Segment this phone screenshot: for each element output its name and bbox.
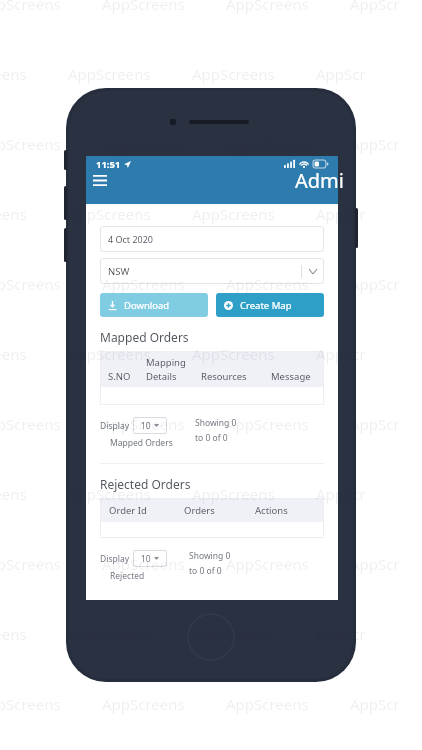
button[interactable]: 10 xyxy=(133,417,167,434)
staticText: AppScreens xyxy=(316,64,366,84)
button[interactable]: Download xyxy=(100,293,208,317)
staticText: Resources xyxy=(201,370,247,383)
staticText: Details xyxy=(146,370,177,383)
staticText: AppScreens xyxy=(68,64,192,84)
button[interactable]: 10 xyxy=(133,550,167,567)
staticText: Download xyxy=(124,299,170,312)
staticText: Create Map xyxy=(240,299,292,312)
staticText: AppScreens xyxy=(350,554,400,574)
staticText: AppScreens xyxy=(226,414,350,434)
staticText: AppScreens xyxy=(0,274,102,294)
staticText: AppScreens xyxy=(102,274,226,294)
staticText: AppScreens xyxy=(316,204,366,224)
staticText: Rejected xyxy=(110,570,145,582)
staticText: AppScreens xyxy=(192,64,316,84)
staticText: to 0 of 0 xyxy=(195,432,228,444)
staticText: AppScreens xyxy=(350,134,400,154)
staticText: AppScreens xyxy=(350,694,400,714)
staticText: NSW xyxy=(108,265,130,278)
staticText: AppScreens xyxy=(350,414,400,434)
staticText: Rejected Orders xyxy=(100,476,191,492)
staticText: AppScreens xyxy=(226,274,350,294)
staticText: 10 xyxy=(141,553,151,565)
staticText: Mapped Orders xyxy=(100,329,189,345)
staticText: AppScreens xyxy=(0,414,102,434)
staticText: AppScreens xyxy=(68,344,192,364)
staticText: Showing 0 xyxy=(189,550,231,562)
staticText: AppScreens xyxy=(192,344,316,364)
staticText: Showing 0 xyxy=(195,417,237,429)
staticText: AppScreens xyxy=(68,484,192,504)
staticText: AppScreens xyxy=(226,0,350,14)
staticText: AppScreens xyxy=(0,204,68,224)
staticText: 4 Oct 2020 xyxy=(108,233,154,245)
staticText: AppScreens xyxy=(0,344,68,364)
staticText: Admi xyxy=(295,167,344,194)
staticText: AppScreens xyxy=(102,694,226,714)
staticText: AppScreens xyxy=(102,554,226,574)
staticText: AppScreens xyxy=(350,274,400,294)
staticText: AppScreens xyxy=(102,414,226,434)
staticText: Order Id xyxy=(109,504,147,517)
staticText: AppScreens xyxy=(226,694,350,714)
staticText: AppScreens xyxy=(316,344,366,364)
staticText: AppScreens xyxy=(0,624,68,644)
staticText: Actions xyxy=(255,504,288,517)
staticText: Message xyxy=(271,370,311,383)
staticText: AppScreens xyxy=(102,0,226,14)
staticText: AppScreens xyxy=(192,484,316,504)
staticText: 11:51 xyxy=(96,158,121,171)
staticText: AppScreens xyxy=(0,694,102,714)
staticText: AppScreens xyxy=(350,0,400,14)
staticText: AppScreens xyxy=(316,484,366,504)
button[interactable]: 4 Oct 2020 xyxy=(100,226,324,252)
button[interactable]: NSW xyxy=(100,258,324,284)
staticText: Mapping xyxy=(146,356,186,369)
staticText: AppScreens xyxy=(192,204,316,224)
button[interactable]: Create Map xyxy=(216,293,324,317)
staticText: Mapped Orders xyxy=(110,437,173,449)
staticText: Display xyxy=(100,420,129,432)
staticText: S.NO xyxy=(108,370,131,383)
staticText: Display xyxy=(100,553,129,565)
staticText: to 0 of 0 xyxy=(189,565,222,577)
staticText: AppScreens xyxy=(0,0,102,14)
staticText: AppScreens xyxy=(68,204,192,224)
button[interactable]: Open navigation menu xyxy=(88,168,112,192)
staticText: Orders xyxy=(184,504,215,517)
staticText: AppScreens xyxy=(0,554,102,574)
staticText: AppScreens xyxy=(316,624,366,644)
staticText: AppScreens xyxy=(0,134,102,154)
staticText: AppScreens xyxy=(226,554,350,574)
staticText: 10 xyxy=(141,420,151,432)
staticText: AppScreens xyxy=(0,484,68,504)
